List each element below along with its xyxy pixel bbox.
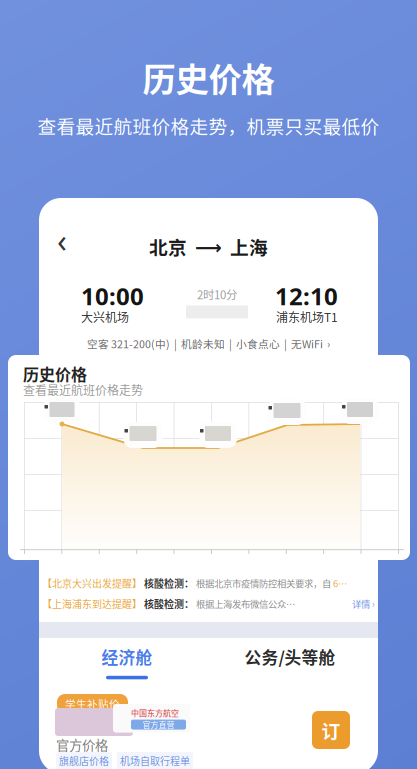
staticText: 历史价格 <box>23 362 87 385</box>
staticText: 空客 321-200(中) | 机龄未知 | 小食点心 | 无WiFi › <box>87 336 330 351</box>
staticText: 12:10 <box>275 280 338 312</box>
button[interactable]: 空客 321-200(中) | 机龄未知 | 小食点心 | 无WiFi › <box>39 336 378 351</box>
staticText: 旗舰店价格 <box>59 753 109 768</box>
button[interactable]: Back <box>49 228 75 252</box>
staticText: 机场自取行程单 <box>120 753 190 768</box>
button[interactable]: 公务/头等舱 <box>208 638 371 686</box>
staticText: 核酸检测： <box>144 596 194 611</box>
staticText: 经济舱 <box>101 645 152 669</box>
staticText: 公务/头等舱 <box>244 645 335 669</box>
button[interactable]: 详情 › <box>352 597 375 610</box>
button[interactable]: 订 <box>312 711 350 749</box>
staticText: 10:00 <box>81 280 144 312</box>
staticText: 查看最近航班价格走势，机票只买最低价 <box>37 112 379 139</box>
staticText: 浦东机场T1 <box>276 308 338 325</box>
staticText: 官方价格 <box>56 735 108 754</box>
staticText: 根据北京市疫情防控相关要求，自 <box>196 576 331 590</box>
staticText: 学生补贴价 <box>65 696 120 711</box>
staticText: 2时10分 <box>197 286 237 302</box>
staticText: 历史价格 <box>142 53 274 101</box>
button[interactable]: 经济舱 <box>45 638 208 686</box>
staticText: 根据上海发布微信公众… <box>196 597 295 610</box>
staticText: 大兴机场 <box>81 308 129 325</box>
staticText: ‹ <box>57 219 67 261</box>
staticText: 详情 › <box>352 597 375 610</box>
staticText: 【上海浦东到达提醒】 <box>42 596 142 611</box>
staticText: 查看最近航班价格走势 <box>23 381 143 398</box>
staticText: 6… <box>333 576 347 590</box>
staticText: 核酸检测： <box>144 576 194 590</box>
staticText: 订 <box>321 716 340 743</box>
staticText: 中国东方航空 <box>131 707 179 719</box>
staticText: 官方直营 <box>142 719 174 730</box>
staticText: 北京 ⟶ 上海 <box>149 233 268 260</box>
staticText: 【北京大兴出发提醒】 <box>42 576 142 590</box>
